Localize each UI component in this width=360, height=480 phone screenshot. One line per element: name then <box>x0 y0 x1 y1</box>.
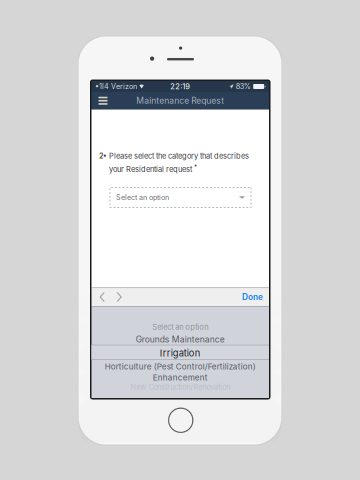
button[interactable]: Next field <box>111 287 128 306</box>
staticText: * <box>194 163 197 171</box>
staticText: Select an option <box>152 322 208 332</box>
staticText: •1l4 Verizon <box>95 82 137 91</box>
staticText: Maintenance Request <box>136 96 224 106</box>
button[interactable]: Previous field <box>93 287 111 306</box>
button[interactable]: Select an option <box>109 187 251 208</box>
staticText: Done <box>242 292 263 302</box>
button[interactable]: Done <box>236 287 269 306</box>
staticText: Enhancement <box>153 373 208 382</box>
staticText: 2• <box>99 151 107 160</box>
staticText: Grounds Maintenance <box>136 334 225 345</box>
staticText: New Construction/Renovation <box>130 382 230 391</box>
staticText: Horticulture (Pest Control/Fertilization… <box>105 362 256 371</box>
staticText: Please select the category that describe… <box>109 151 249 174</box>
staticText: 22:19 <box>170 82 190 91</box>
staticText: 83% <box>236 82 251 91</box>
staticText: Irrigation <box>160 347 201 359</box>
staticText: Select an option <box>116 193 169 202</box>
button[interactable]: Menu <box>92 92 113 109</box>
